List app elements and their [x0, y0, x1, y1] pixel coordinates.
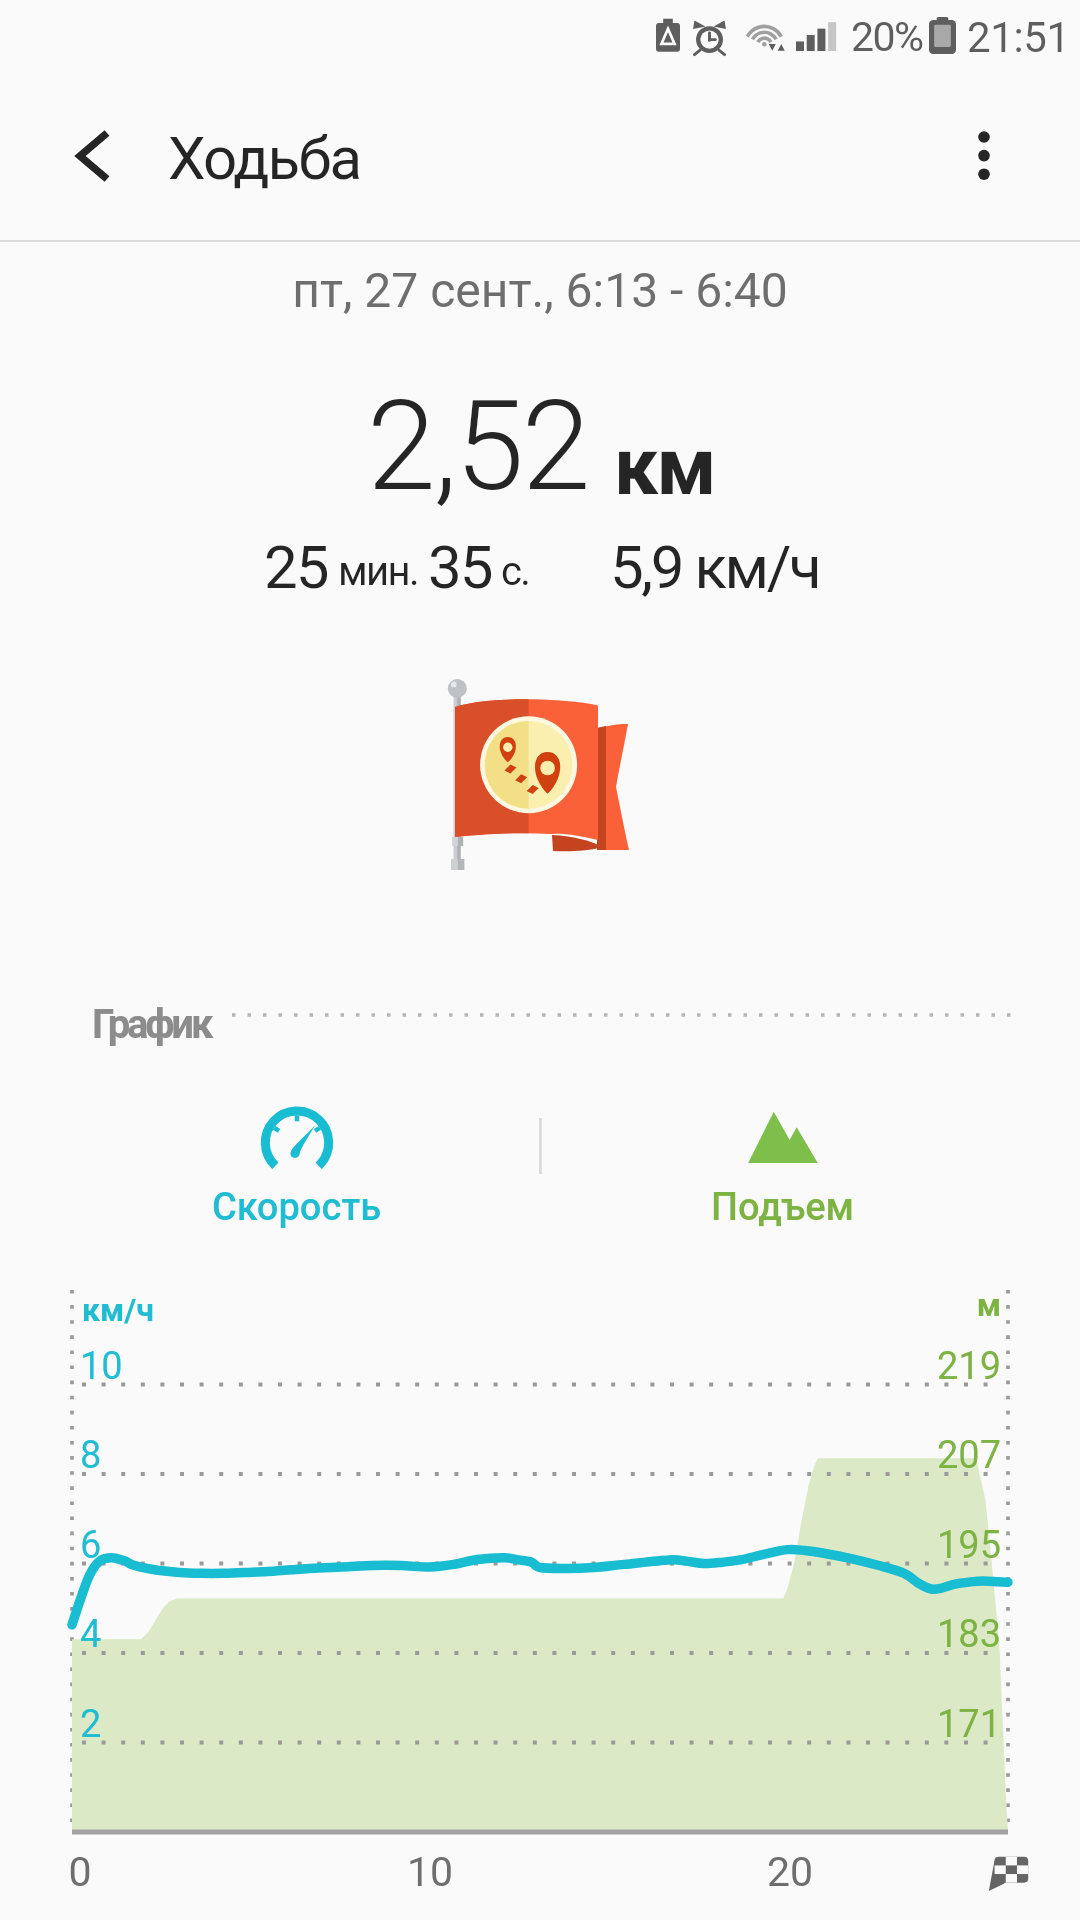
staticText: 25 [264, 532, 328, 602]
staticText: 4 [80, 1612, 102, 1657]
button[interactable]: More options [948, 120, 1020, 192]
staticText: Подъем [711, 1185, 855, 1230]
staticText: 35 [428, 532, 492, 602]
staticText: 219 [800, 1344, 1001, 1389]
staticText: м [800, 1286, 1001, 1324]
staticText: 2,52 [367, 374, 589, 519]
staticText: График [92, 1001, 211, 1048]
staticText: 195 [800, 1523, 1001, 1568]
staticText: 21:51 [967, 13, 1070, 62]
staticText: 8 [80, 1433, 102, 1478]
staticText: км [614, 421, 715, 514]
staticText: Ходьба [168, 123, 361, 193]
button[interactable]: Скорость [167, 1109, 427, 1230]
staticText: 10 [80, 1344, 123, 1389]
button[interactable]: Подъем [653, 1109, 913, 1230]
staticText: с. [501, 548, 530, 595]
staticText: 183 [800, 1612, 1001, 1657]
staticText: пт, 27 сент., 6:13 - 6:40 [0, 262, 1080, 318]
staticText: 0 [40, 1848, 120, 1896]
staticText: 2 [80, 1702, 102, 1747]
staticText: км/ч [82, 1291, 155, 1329]
staticText: мин. [338, 548, 418, 595]
staticText: 10 [390, 1848, 470, 1896]
button[interactable]: Back [52, 120, 124, 192]
staticText: 171 [800, 1702, 1001, 1747]
staticText: 6 [80, 1523, 102, 1568]
staticText: 207 [800, 1433, 1001, 1478]
staticText: 20 [750, 1848, 830, 1896]
staticText: 5,9 км/ч [610, 532, 820, 602]
staticText: 20% [851, 13, 923, 61]
staticText: Скорость [212, 1185, 382, 1230]
